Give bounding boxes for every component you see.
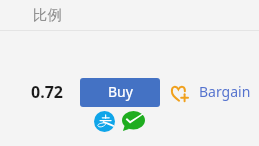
button[interactable]: Buy	[80, 78, 160, 107]
staticText: 0.72	[31, 81, 63, 103]
staticText: 比例	[33, 6, 62, 24]
staticText: Buy	[108, 82, 133, 101]
button[interactable]: Pay with Alipay	[94, 111, 115, 132]
button[interactable]: Pay with WeChat Pay	[122, 111, 145, 131]
button[interactable]: Bargain	[171, 78, 251, 107]
staticText: Bargain	[199, 82, 251, 101]
